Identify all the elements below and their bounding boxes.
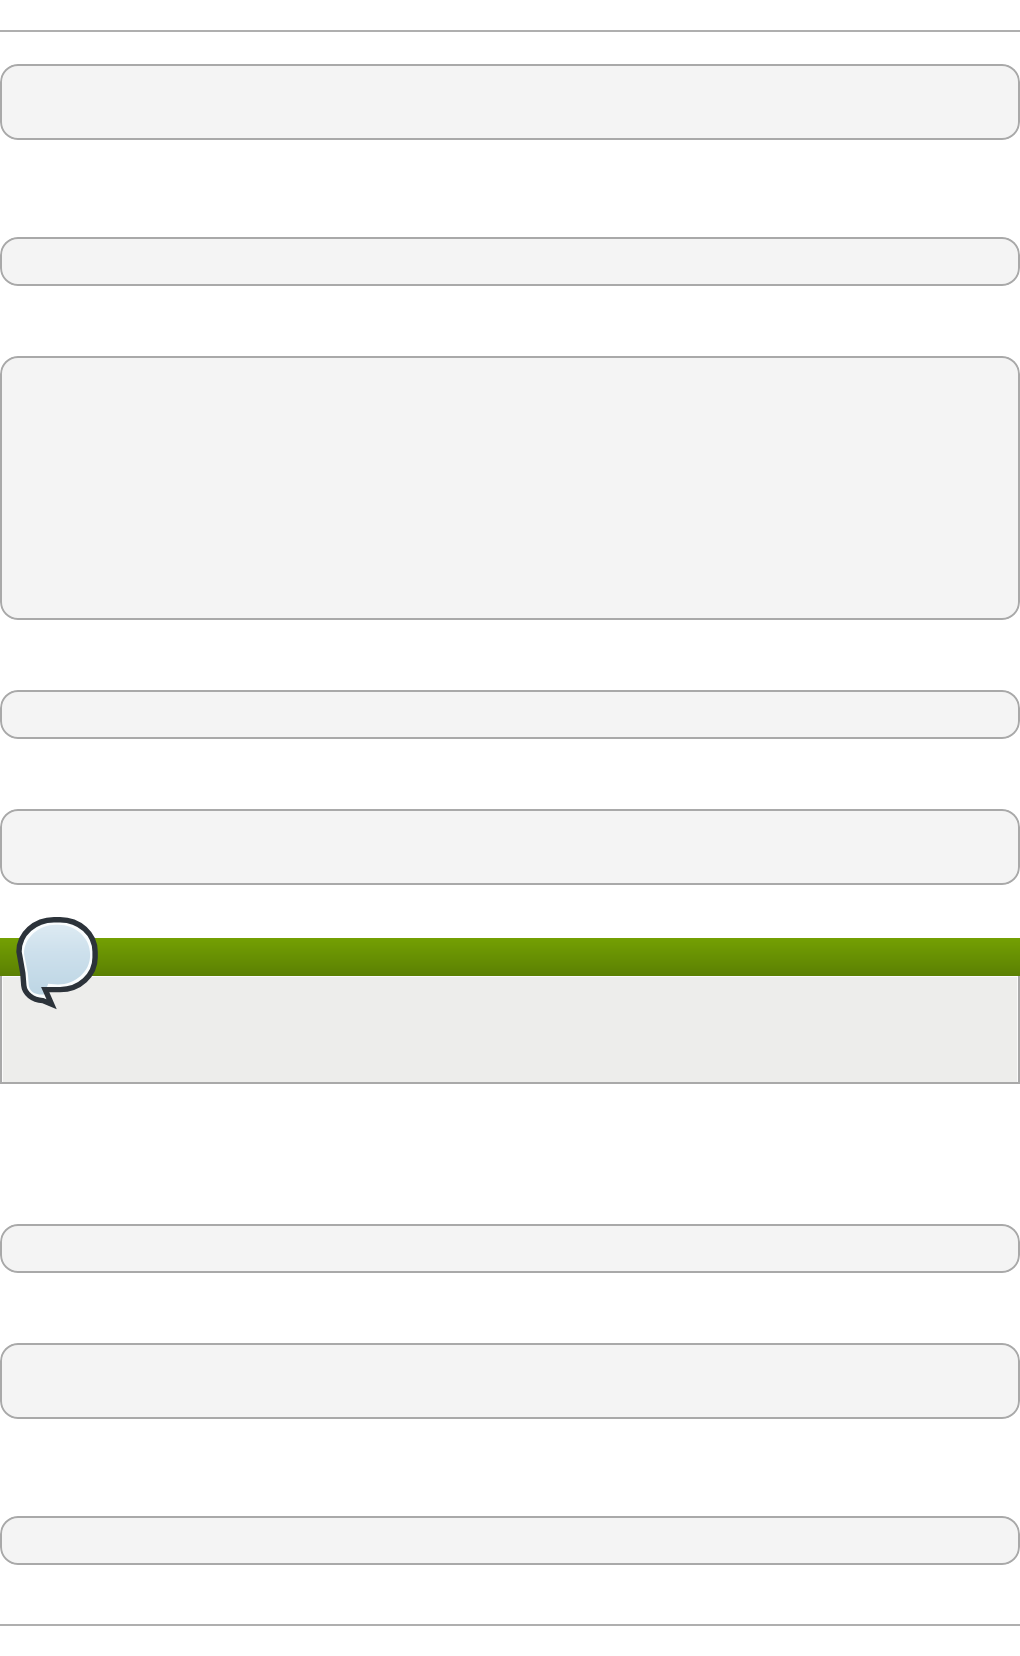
button[interactable] xyxy=(0,938,1020,976)
button[interactable] xyxy=(0,975,1020,1084)
button[interactable] xyxy=(0,690,1020,739)
button[interactable]: Comments xyxy=(12,913,104,1015)
button[interactable] xyxy=(0,1516,1020,1565)
button[interactable] xyxy=(0,237,1020,286)
button[interactable] xyxy=(0,1343,1020,1419)
button[interactable] xyxy=(0,1224,1020,1273)
button[interactable] xyxy=(0,809,1020,885)
button[interactable] xyxy=(0,64,1020,140)
button[interactable] xyxy=(0,356,1020,620)
